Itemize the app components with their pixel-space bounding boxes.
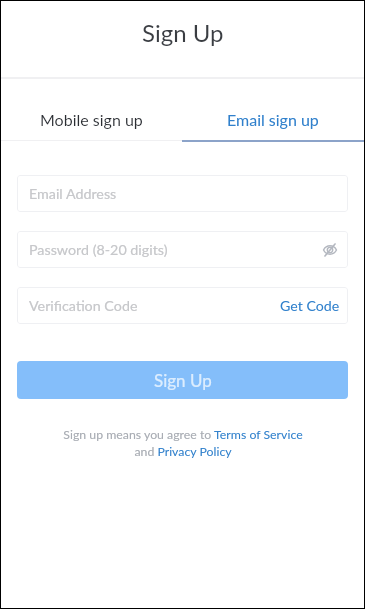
staticText: Sign Up: [142, 18, 224, 47]
button[interactable]: Verification Code: [17, 287, 348, 324]
button[interactable]: Email Address: [17, 175, 348, 212]
staticText: Email Address: [29, 185, 117, 202]
staticText: Get Code: [280, 297, 340, 314]
staticText: Password (8-20 digits): [29, 241, 168, 258]
staticText: Sign up means you agree to Terms of Serv…: [59, 427, 307, 458]
button[interactable]: Show password: [320, 240, 340, 260]
button[interactable]: Email sign up: [182, 79, 364, 142]
button[interactable]: Get Code: [280, 297, 340, 314]
staticText: Mobile sign up: [40, 110, 143, 129]
staticText: Sign Up: [154, 370, 212, 390]
staticText: Verification Code: [29, 297, 138, 314]
staticText: Email sign up: [227, 110, 319, 129]
button[interactable]: Sign Up: [17, 361, 348, 399]
button[interactable]: Password (8-20 digits): [17, 231, 348, 268]
button[interactable]: Mobile sign up: [1, 79, 182, 142]
